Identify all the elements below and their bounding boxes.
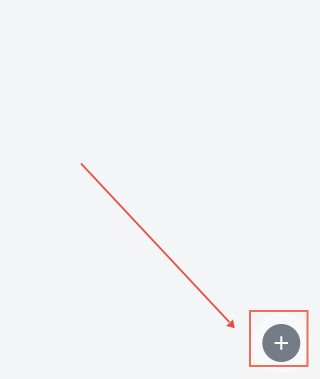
button[interactable]: Add <box>255 317 307 369</box>
